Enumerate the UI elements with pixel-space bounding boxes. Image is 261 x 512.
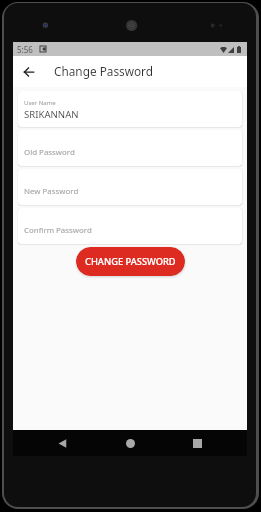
- button[interactable]: Confirm Password: [18, 208, 242, 244]
- button[interactable]: Back: [41, 430, 84, 456]
- staticText: User Name: [24, 99, 56, 107]
- staticText: Change Password: [54, 63, 153, 79]
- button[interactable]: Navigate up: [13, 56, 44, 87]
- button[interactable]: Home: [109, 430, 152, 456]
- button[interactable]: Recent apps: [176, 430, 219, 456]
- button[interactable]: Old Password: [18, 130, 242, 166]
- staticText: New Password: [24, 186, 79, 197]
- staticText: CHANGE PASSWORD: [85, 255, 176, 268]
- button[interactable]: CHANGE PASSWORD: [76, 247, 185, 276]
- staticText: SRIKANNAN: [24, 108, 79, 121]
- button[interactable]: User Name: [18, 91, 242, 127]
- staticText: 5:56: [17, 44, 33, 55]
- button[interactable]: New Password: [18, 169, 242, 205]
- staticText: Old Password: [24, 147, 75, 158]
- staticText: Confirm Password: [24, 225, 92, 236]
